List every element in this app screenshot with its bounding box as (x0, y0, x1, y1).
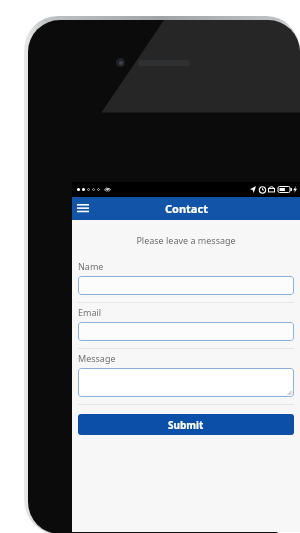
button[interactable] (78, 368, 294, 397)
staticText: Name (78, 260, 104, 272)
staticText: Message (78, 352, 116, 364)
staticText: Please leave a message (78, 234, 294, 246)
button[interactable]: Menu (72, 197, 94, 220)
button[interactable] (78, 276, 294, 295)
staticText: Submit (168, 418, 204, 432)
staticText: Contact (165, 201, 208, 216)
staticText: Email (78, 306, 102, 318)
button[interactable]: Submit (78, 414, 294, 435)
button[interactable] (78, 322, 294, 341)
